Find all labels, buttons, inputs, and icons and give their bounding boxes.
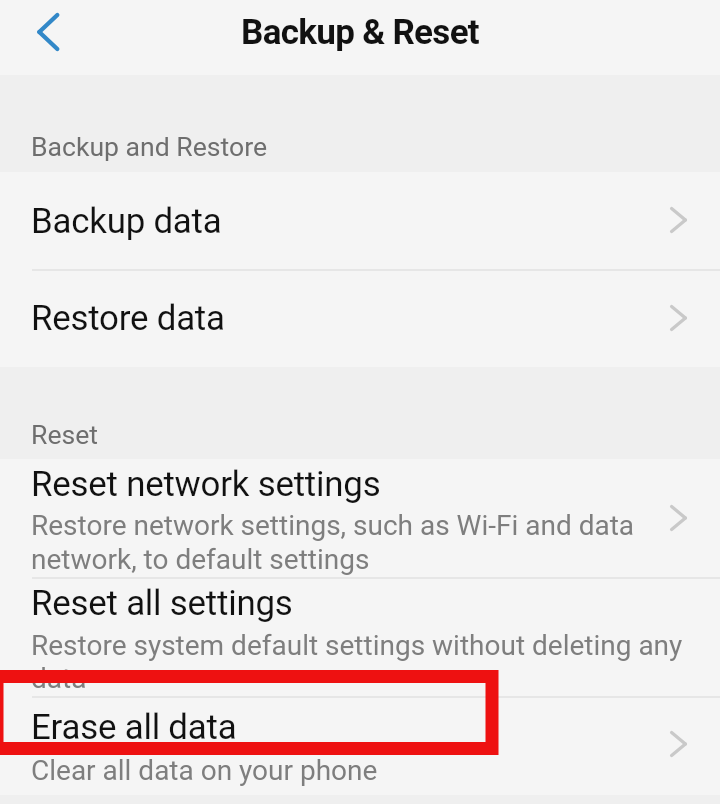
button[interactable]: Backup data [0,172,720,269]
button[interactable]: Restore data [0,269,720,367]
button[interactable]: Navigate up [8,8,70,68]
button[interactable]: Erase all data [0,696,720,795]
staticText: Erase all data [31,707,237,748]
staticText: Clear all data on your phone [31,754,378,787]
staticText: Restore data [31,298,225,339]
staticText: Restore network settings, such as Wi-Fi … [31,509,635,542]
staticText: data [31,662,87,695]
staticText: Backup data [31,201,222,242]
button[interactable]: Reset all settings [0,577,720,696]
button[interactable]: Reset network settings [0,459,720,577]
staticText: Backup & Reset [241,12,479,53]
staticText: Reset all settings [31,583,293,624]
staticText: network, to default settings [31,543,370,576]
staticText: Backup and Restore [31,131,268,162]
staticText: Restore system default settings without … [31,629,683,662]
staticText: Reset [31,419,99,450]
staticText: Reset network settings [31,464,381,505]
